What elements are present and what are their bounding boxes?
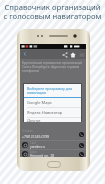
button[interactable]: Поделиться xyxy=(61,51,69,59)
staticText: +7(812) 245-0789 xyxy=(22,134,50,139)
staticText: Другое xyxy=(27,118,41,122)
staticText: Телефон xyxy=(22,129,33,133)
button[interactable]: Позвонить xyxy=(77,150,85,158)
staticText: Справочник организаций с голосовым навиг… xyxy=(0,2,105,21)
staticText: Крупнейший справочник организаций Санкт-… xyxy=(22,61,83,73)
staticText: yandex.ru xyxy=(30,145,45,149)
button[interactable]: Назад xyxy=(21,50,29,58)
button[interactable]: Позвонить xyxy=(77,130,85,138)
staticText: Адрес xyxy=(30,150,38,154)
button[interactable]: Позвонить xyxy=(77,141,85,149)
button[interactable]: Ещё xyxy=(77,50,86,59)
button[interactable]: Google Maps xyxy=(24,98,81,107)
button[interactable]: Адрес xyxy=(20,149,86,158)
button[interactable]: Сайт xyxy=(20,140,86,149)
staticText: Яндекс.Навигатор xyxy=(27,110,63,115)
button[interactable]: Телефон xyxy=(20,127,86,139)
staticText: Сайт xyxy=(30,141,36,145)
button[interactable]: Яндекс.Навигатор xyxy=(24,108,81,117)
staticText: Google Maps xyxy=(27,100,52,105)
button[interactable]: Домой xyxy=(69,51,77,59)
staticText: Выберите программу для навигации xyxy=(27,86,73,95)
button[interactable]: Другое xyxy=(24,118,81,122)
staticText: Невский пр., 28 xyxy=(30,154,55,158)
